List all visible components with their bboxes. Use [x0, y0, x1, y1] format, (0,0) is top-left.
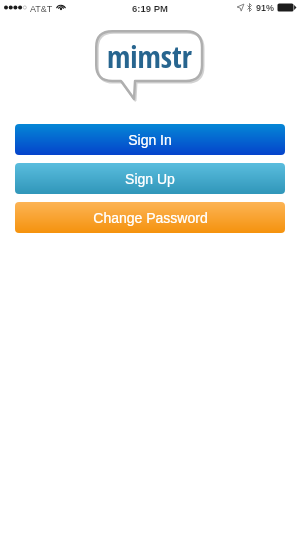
staticText: 91%: [256, 3, 275, 13]
staticText: 6:19 PM: [0, 3, 300, 14]
button[interactable]: Sign Up: [15, 163, 285, 194]
button[interactable]: Change Password: [15, 202, 285, 233]
button[interactable]: Sign In: [15, 124, 285, 155]
staticText: Sign Up: [125, 171, 175, 187]
staticText: AT&T: [30, 4, 53, 14]
staticText: Sign In: [128, 132, 172, 148]
staticText: mimstr: [107, 36, 192, 77]
staticText: Change Password: [93, 210, 208, 226]
